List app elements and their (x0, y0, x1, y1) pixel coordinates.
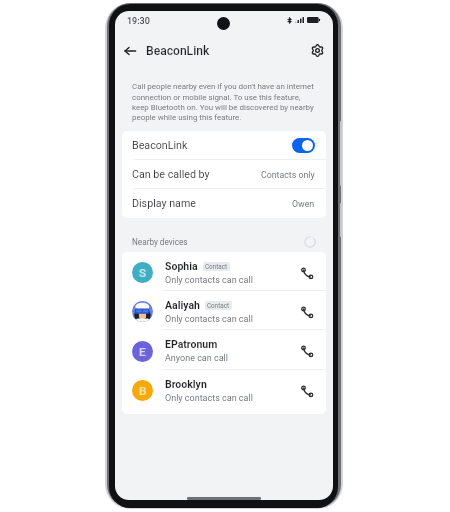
staticText: Owen (292, 199, 315, 209)
button[interactable]: S (122, 252, 326, 291)
staticText: BeaconLink (132, 139, 188, 152)
staticText: Display name (132, 197, 196, 210)
staticText: Contacts only (261, 170, 315, 180)
button[interactable]: Call Sophia (297, 263, 317, 283)
button[interactable]: BeaconLink (122, 131, 326, 160)
button[interactable]: E (122, 330, 326, 370)
staticText: Only contacts can call (165, 393, 253, 404)
staticText: Brooklyn (165, 378, 207, 390)
button[interactable]: B (122, 370, 326, 409)
staticText: Contact (205, 263, 228, 270)
staticText: EPatronum (165, 338, 218, 350)
button[interactable]: Back (120, 41, 139, 60)
button[interactable]: Settings (308, 41, 327, 60)
staticText: Sophia (165, 260, 198, 272)
staticText: BeaconLink (146, 44, 210, 58)
staticText: 19:30 (127, 16, 150, 27)
button[interactable]: Call Aaliyah (297, 302, 317, 322)
staticText: Nearby devices (132, 237, 188, 247)
staticText: Only contacts can call (165, 275, 253, 286)
button[interactable]: BeaconLink toggle, on (292, 138, 315, 153)
staticText: Aaliyah (165, 299, 200, 311)
button[interactable]: Can be called by (122, 160, 326, 189)
button[interactable]: Aaliyah (122, 291, 326, 330)
button[interactable]: Display name (122, 189, 326, 218)
staticText: Can be called by (132, 168, 210, 181)
staticText: Call people nearby even if you don't hav… (132, 82, 314, 122)
staticText: Anyone can call (165, 353, 228, 364)
staticText: Contact (207, 302, 230, 309)
button[interactable]: Call EPatronum (297, 341, 317, 361)
staticText: B (139, 384, 147, 398)
staticText: S (139, 266, 147, 280)
button[interactable]: Call Brooklyn (297, 381, 317, 401)
staticText: Only contacts can call (165, 314, 253, 325)
staticText: E (139, 345, 146, 359)
other: Scanning for nearby devices (304, 236, 316, 248)
